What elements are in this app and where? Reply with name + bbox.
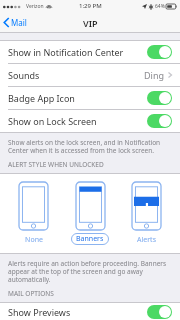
staticText: Badge App Icon bbox=[8, 92, 75, 104]
staticText: ALERT STYLE WHEN UNLOCKED bbox=[8, 160, 104, 169]
staticText: MAIL OPTIONS bbox=[8, 289, 54, 298]
staticText: Alerts require an action before proceedi… bbox=[8, 259, 172, 284]
button[interactable]: Toggle bbox=[147, 45, 172, 59]
staticText: Banners bbox=[76, 234, 104, 244]
button[interactable]: Mail bbox=[0, 12, 33, 33]
staticText: 1:29 PM bbox=[79, 2, 102, 10]
staticText: Sounds bbox=[8, 69, 40, 81]
staticText: Ding bbox=[144, 69, 164, 81]
staticText: 64% bbox=[155, 3, 165, 10]
button[interactable]: Show Previews bbox=[0, 303, 180, 320]
staticText: Show alerts on the lock screen, and in N… bbox=[8, 138, 172, 155]
staticText: Show on Lock Screen bbox=[8, 115, 97, 127]
button[interactable]: Show in Notification Center bbox=[0, 41, 180, 63]
button[interactable]: Toggle bbox=[147, 114, 172, 128]
staticText: VIP bbox=[83, 17, 98, 29]
button[interactable]: Alerts bbox=[128, 182, 165, 247]
button[interactable]: Toggle bbox=[147, 305, 172, 319]
staticText: Mail bbox=[11, 17, 27, 28]
staticText: Verizon bbox=[26, 3, 44, 10]
staticText: Show Previews bbox=[8, 306, 71, 318]
button[interactable]: None bbox=[15, 182, 52, 247]
button[interactable]: Sounds bbox=[0, 64, 180, 86]
staticText: Show in Notification Center bbox=[8, 46, 124, 58]
staticText: Alerts bbox=[137, 235, 156, 245]
button[interactable]: Toggle bbox=[147, 91, 172, 105]
button[interactable]: Badge App Icon bbox=[0, 87, 180, 109]
button[interactable]: Show on Lock Screen bbox=[0, 110, 180, 132]
staticText: None bbox=[25, 235, 43, 245]
button[interactable]: Banners bbox=[67, 182, 113, 245]
